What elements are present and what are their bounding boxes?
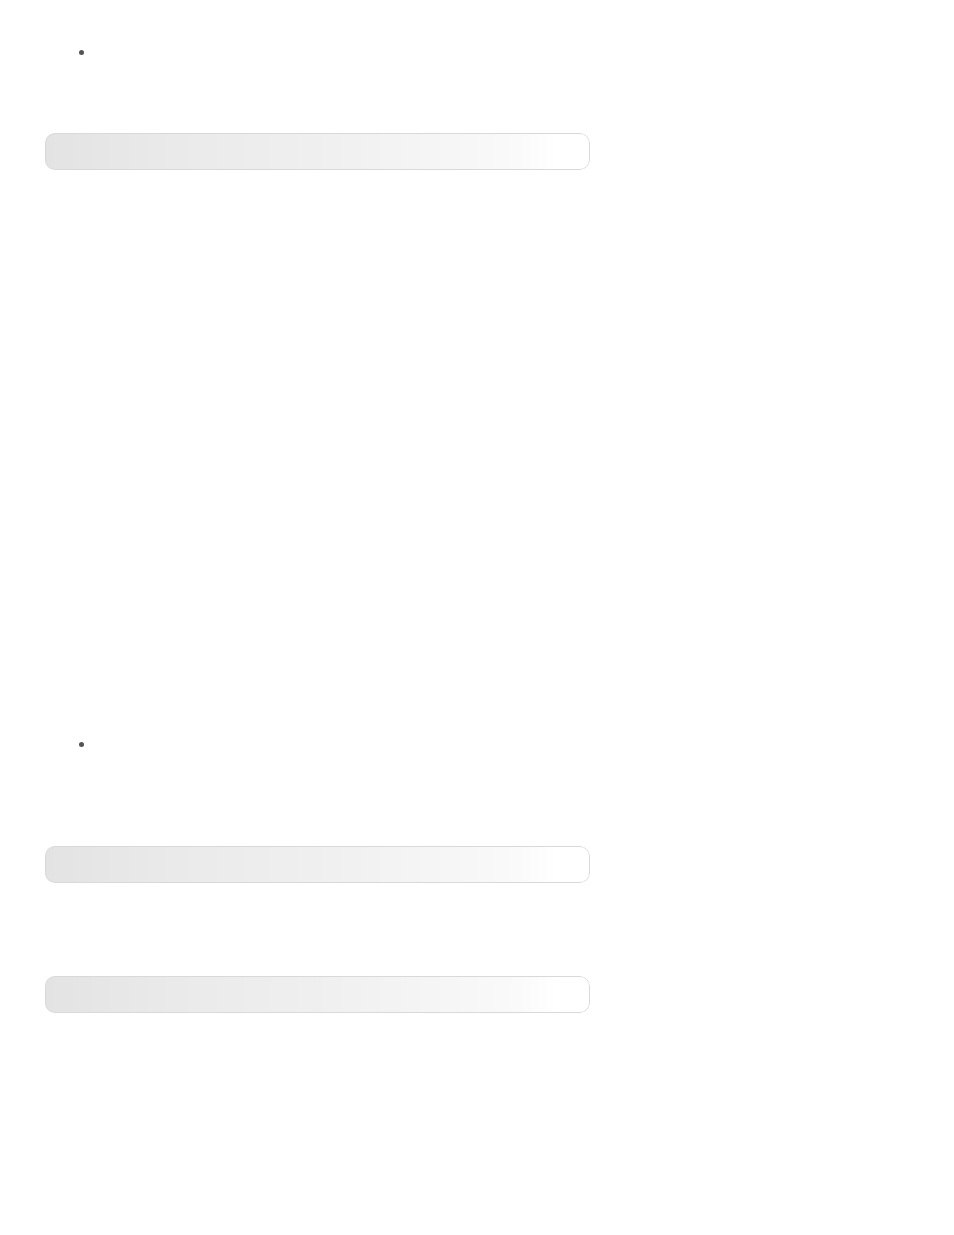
other: Section marker — [79, 50, 84, 55]
other: Section marker — [79, 742, 84, 747]
button[interactable]: Loading content — [45, 133, 590, 170]
button[interactable]: Loading content — [45, 976, 590, 1013]
button[interactable]: Loading content — [45, 846, 590, 883]
